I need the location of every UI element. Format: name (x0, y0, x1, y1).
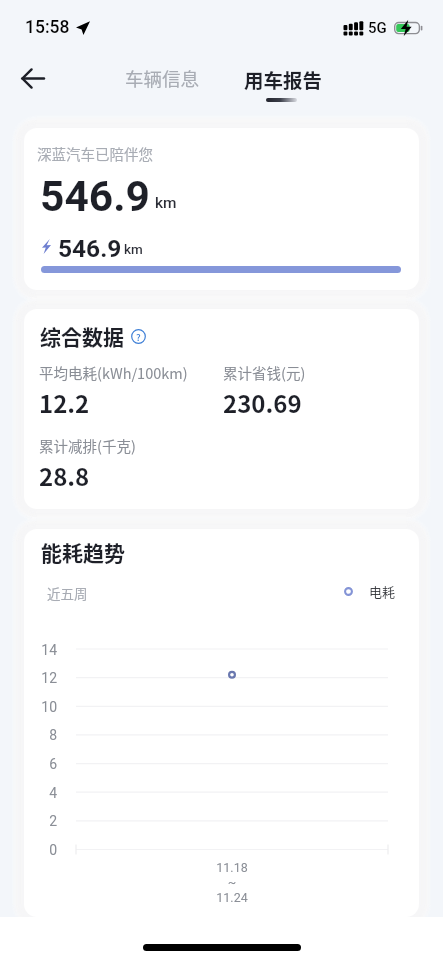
button[interactable]: Help (131, 329, 146, 344)
staticText: km (124, 241, 143, 257)
staticText: 综合数据 (40, 321, 124, 351)
staticText: 28.8 (39, 458, 90, 493)
staticText: 5G (368, 19, 387, 37)
staticText: 0 (27, 842, 57, 858)
staticText: km (155, 194, 177, 212)
button[interactable]: Back (10, 57, 54, 100)
staticText: 累计省钱(元) (223, 362, 306, 383)
button[interactable]: 车辆信息 (113, 61, 211, 95)
staticText: 能耗趋势 (41, 537, 125, 567)
staticText: 平均电耗(kWh/100km) (39, 362, 188, 383)
staticText: 15:58 (25, 17, 70, 38)
button[interactable]: 电耗 (338, 580, 414, 602)
staticText: 用车报告 (244, 65, 323, 93)
staticText: 4 (27, 785, 57, 801)
staticText: 累计减排(千克) (39, 435, 136, 456)
staticText: 546.9 (58, 234, 122, 263)
staticText: 12 (27, 670, 57, 686)
staticText: 546.9 (40, 172, 150, 222)
staticText: 近五周 (47, 583, 88, 603)
staticText: 6 (27, 756, 57, 772)
staticText: 10 (27, 699, 57, 715)
staticText: 12.2 (39, 385, 90, 420)
staticText: 11.18 ~ 11.24 (182, 860, 282, 905)
staticText: 230.69 (223, 385, 302, 420)
button[interactable]: 用车报告 (235, 60, 332, 102)
staticText: 电耗 (369, 582, 396, 601)
staticText: 8 (27, 727, 57, 743)
staticText: ? (136, 330, 141, 344)
staticText: 14 (27, 642, 57, 658)
staticText: 车辆信息 (125, 65, 200, 92)
staticText: 2 (27, 813, 57, 829)
staticText: 深蓝汽车已陪伴您 (37, 143, 153, 164)
